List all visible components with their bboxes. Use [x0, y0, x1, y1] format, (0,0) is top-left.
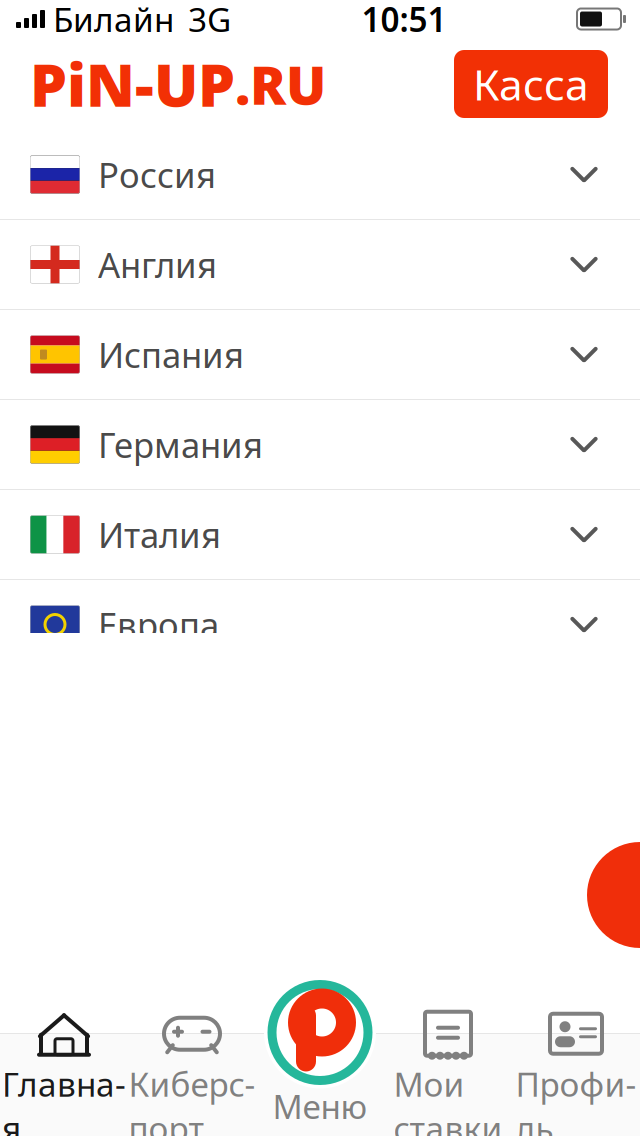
staticText: Меню	[272, 1084, 367, 1128]
button[interactable]: Главная	[0, 1033, 128, 1136]
staticText: 3G	[188, 0, 231, 41]
button[interactable]: Италия	[0, 490, 640, 580]
button[interactable]: Мои ставки	[384, 1033, 512, 1136]
button[interactable]: Профиль	[512, 1033, 640, 1136]
button[interactable]: Меню	[256, 1033, 384, 1136]
button[interactable]: Поддержка	[530, 840, 640, 950]
staticText: Билайн	[53, 0, 174, 41]
staticText: Европа	[98, 601, 219, 647]
staticText: 10:51	[361, 0, 446, 41]
button[interactable]: Европа	[0, 580, 640, 670]
staticText: Англия	[98, 241, 217, 287]
staticText: Мои ставки	[393, 1062, 502, 1136]
staticText: Италия	[98, 511, 221, 557]
staticText: Испания	[98, 331, 244, 377]
button[interactable]: Касса	[454, 50, 608, 118]
button[interactable]: Шотландия	[0, 760, 640, 850]
button[interactable]: Россия	[0, 130, 640, 220]
staticText: Киберспорт	[128, 1062, 255, 1136]
staticText: Главная	[2, 1062, 126, 1136]
button[interactable]: PiN-UP	[0, 45, 326, 123]
staticText: Касса	[473, 56, 589, 112]
button[interactable]: Америка	[0, 940, 640, 1030]
staticText: .RU	[235, 49, 326, 119]
button[interactable]: Испания	[0, 310, 640, 400]
button[interactable]: Германия	[0, 400, 640, 490]
button[interactable]: Португалия	[0, 850, 640, 940]
staticText: Россия	[98, 151, 216, 197]
staticText: Германия	[98, 421, 263, 467]
button[interactable]: Англия	[0, 220, 640, 310]
button[interactable]: Меню	[264, 976, 376, 1088]
staticText: PiN-UP	[30, 45, 235, 123]
staticText: Профиль	[515, 1062, 636, 1136]
button[interactable]: Киберспорт	[128, 1033, 256, 1136]
